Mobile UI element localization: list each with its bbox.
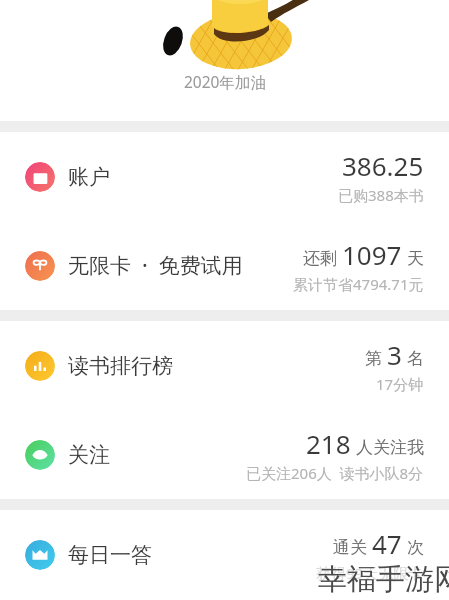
staticText: 47 bbox=[372, 526, 402, 561]
staticText: 还剩 bbox=[303, 248, 337, 269]
staticText: 无限卡 · 免费试用 bbox=[68, 251, 243, 280]
button[interactable]: 账户 bbox=[0, 132, 449, 221]
staticText: 读书排行榜 bbox=[68, 353, 173, 379]
staticText: 已购388本书 bbox=[338, 185, 424, 205]
staticText: 通关 bbox=[333, 537, 367, 558]
button[interactable]: 读书排行榜 bbox=[0, 321, 449, 410]
staticText: 人关注我 bbox=[356, 437, 424, 458]
button[interactable]: 关注 bbox=[0, 410, 449, 499]
staticText: 幸福手游网 bbox=[318, 561, 449, 598]
staticText: 账户 bbox=[68, 164, 110, 190]
staticText: 获得99天无限卡 bbox=[316, 563, 424, 583]
staticText: 天 bbox=[407, 248, 424, 269]
staticText: 17分钟 bbox=[376, 374, 424, 394]
staticText: 2020年加油 bbox=[184, 71, 266, 92]
staticText: 218 bbox=[306, 426, 351, 461]
staticText: 关注 bbox=[68, 442, 110, 468]
staticText: 1097 bbox=[342, 237, 402, 272]
staticText: 第 bbox=[365, 348, 382, 369]
button[interactable]: 每日一答 bbox=[0, 510, 449, 599]
staticText: 累计节省4794.71元 bbox=[293, 274, 424, 294]
staticText: 3 bbox=[387, 337, 402, 372]
button[interactable]: 无限卡 · 免费试用 bbox=[0, 221, 449, 310]
staticText: 次 bbox=[407, 537, 424, 558]
staticText: 每日一答 bbox=[68, 542, 152, 568]
staticText: 名 bbox=[407, 348, 424, 369]
staticText: 已关注206人 读书小队8分 bbox=[246, 463, 424, 483]
staticText: 386.25 bbox=[342, 148, 424, 183]
